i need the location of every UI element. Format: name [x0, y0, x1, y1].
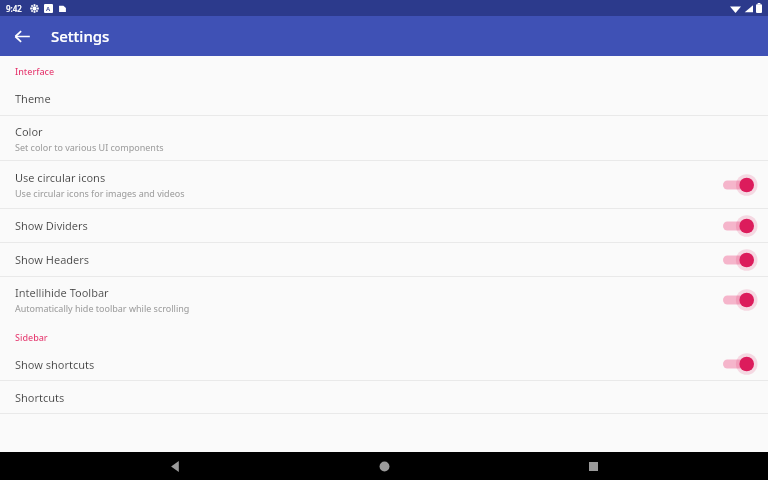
button[interactable]: Toggle	[721, 289, 755, 311]
staticText: Sidebar	[15, 331, 48, 343]
staticText: Show Dividers	[15, 218, 88, 233]
staticText: Use circular icons	[15, 170, 106, 185]
button[interactable]: Recent apps	[574, 452, 612, 480]
staticText: Color	[15, 124, 43, 139]
button[interactable]: Toggle	[721, 353, 755, 375]
button[interactable]: Intellihide Toolbar	[0, 277, 768, 322]
button[interactable]: Show Dividers	[0, 209, 768, 242]
staticText: Use circular icons for images and videos	[15, 187, 185, 199]
button[interactable]: Color	[0, 116, 768, 160]
button[interactable]: Back	[8, 22, 36, 50]
staticText: Interface	[15, 65, 55, 77]
staticText: Theme	[15, 91, 51, 106]
button[interactable]: Home	[365, 452, 403, 480]
staticText: Show shortcuts	[15, 357, 95, 372]
staticText: A	[46, 5, 51, 13]
button[interactable]: Toggle	[721, 215, 755, 237]
staticText: Set color to various UI components	[15, 141, 164, 153]
button[interactable]: Back	[156, 452, 194, 480]
button[interactable]: Use circular icons	[0, 161, 768, 208]
button[interactable]: Show Headers	[0, 243, 768, 276]
staticText: Settings	[51, 26, 110, 46]
button[interactable]: Show shortcuts	[0, 348, 768, 380]
button[interactable]: Theme	[0, 82, 768, 115]
button[interactable]: Toggle	[721, 249, 755, 271]
staticText: 9:42	[6, 3, 22, 14]
staticText: Show Headers	[15, 252, 90, 267]
staticText: Shortcuts	[15, 390, 65, 405]
button[interactable]: Toggle	[721, 174, 755, 196]
button[interactable]: Shortcuts	[0, 381, 768, 413]
staticText: Automatically hide toolbar while scrolli…	[15, 302, 190, 314]
staticText: Intellihide Toolbar	[15, 285, 109, 300]
